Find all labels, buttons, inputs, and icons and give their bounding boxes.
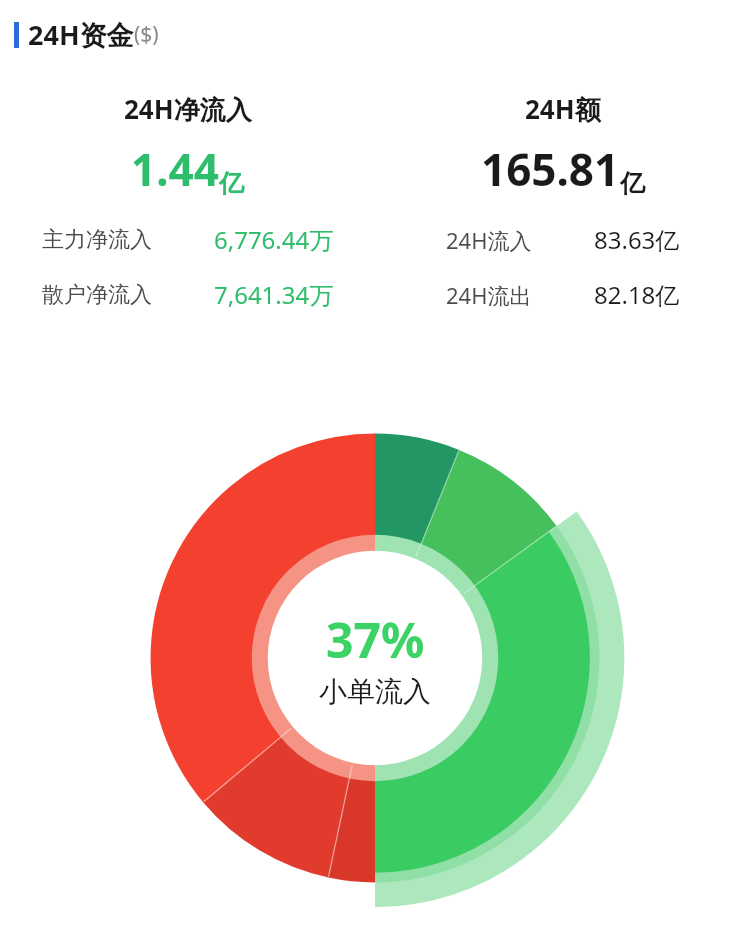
staticText: 24H净流入	[124, 91, 252, 127]
staticText: 亿	[620, 168, 645, 199]
button[interactable]: 24H 资金流向占比环形图, 小单流入 37%	[140, 423, 610, 893]
staticText: 24H资金	[28, 16, 134, 53]
staticText: 1.44	[131, 139, 219, 199]
staticText: 主力净流入	[42, 226, 152, 254]
button[interactable]: 24H额	[375, 91, 750, 311]
staticText: 165.81	[481, 139, 620, 199]
staticText: 亿	[219, 168, 244, 199]
staticText: ($)	[134, 20, 159, 49]
staticText: 24H流出	[446, 280, 532, 310]
staticText: 83.63亿	[594, 223, 680, 256]
button[interactable]: 24H净流入	[0, 91, 375, 311]
staticText: 24H流入	[446, 225, 532, 255]
button[interactable]: 24H资金	[14, 16, 750, 53]
staticText: 6,776.44万	[214, 223, 334, 256]
staticText: 24H额	[525, 91, 601, 127]
staticText: 37%	[326, 607, 425, 672]
staticText: 82.18亿	[594, 278, 680, 311]
staticText: 小单流入	[319, 674, 431, 709]
staticText: 散户净流入	[42, 281, 152, 309]
staticText: 7,641.34万	[214, 278, 334, 311]
